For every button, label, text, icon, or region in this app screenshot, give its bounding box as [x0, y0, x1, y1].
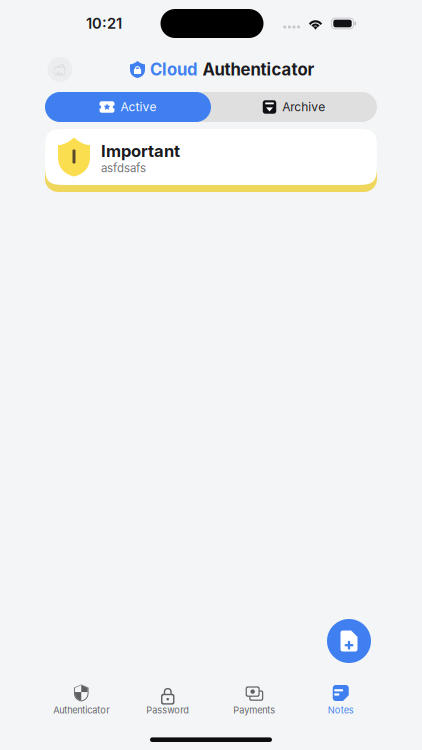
button[interactable]: Payments [211, 684, 297, 716]
staticText: Important [101, 141, 180, 161]
button[interactable]: Account [45, 54, 75, 84]
staticText: 10:21 [86, 15, 122, 32]
staticText: Notes [328, 704, 354, 716]
button[interactable]: Authenticator [38, 684, 124, 716]
staticText: Password [146, 704, 189, 716]
staticText: Authenticator [202, 59, 314, 80]
staticText: Payments [233, 704, 275, 716]
staticText: Active [120, 100, 156, 114]
button[interactable]: Active [45, 92, 211, 122]
button[interactable]: Notes [297, 684, 384, 716]
staticText: Archive [282, 100, 325, 114]
button[interactable]: Important [45, 129, 377, 192]
button[interactable]: Archive [211, 92, 377, 122]
staticText: Cloud [150, 59, 198, 80]
button[interactable]: New note [327, 619, 371, 663]
staticText: Authenticator [53, 704, 109, 716]
button[interactable]: Password [124, 684, 211, 716]
staticText: asfdsafs [101, 161, 146, 175]
